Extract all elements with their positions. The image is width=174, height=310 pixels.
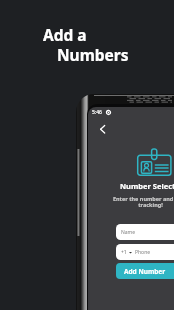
button[interactable]: Back xyxy=(96,122,110,136)
staticText: Enter the number and start tracking! xyxy=(90,195,174,209)
staticText: 5:46 xyxy=(92,109,102,116)
staticText: Numbers xyxy=(57,44,129,65)
staticText: Number Selection xyxy=(120,181,174,191)
button[interactable]: +1 xyxy=(116,244,174,260)
staticText: Add a xyxy=(43,24,87,45)
button[interactable]: Add Number xyxy=(116,263,174,279)
staticText: +1 xyxy=(121,249,127,256)
staticText: Phone xyxy=(135,249,151,256)
staticText: Add Number xyxy=(124,267,166,276)
button[interactable]: Name xyxy=(116,224,174,240)
staticText: Name xyxy=(121,229,136,236)
